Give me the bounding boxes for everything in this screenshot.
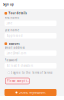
staticText: Your details bbox=[9, 11, 27, 15]
staticText: Password bbox=[4, 58, 17, 62]
button[interactable]: Jane bbox=[4, 20, 56, 26]
staticText: Sign up bbox=[3, 3, 14, 6]
button[interactable]: Create my account bbox=[4, 89, 56, 96]
button[interactable]: At least 8 characters bbox=[4, 63, 56, 68]
button[interactable]: jane@mail.com bbox=[4, 50, 56, 56]
button[interactable]: I agree to the Terms of Service bbox=[4, 71, 56, 74]
staticText: I agree to the Terms of Service bbox=[11, 71, 53, 74]
button[interactable]: Appleseed bbox=[4, 33, 56, 38]
staticText: First name bbox=[4, 16, 19, 19]
staticText: Last name bbox=[4, 28, 19, 32]
staticText: At least 8 characters bbox=[7, 64, 33, 67]
staticText: Please accept the terms bbox=[7, 79, 29, 83]
staticText: Account bbox=[9, 42, 20, 45]
staticText: Create my account bbox=[19, 91, 46, 94]
staticText: Jane bbox=[7, 21, 13, 25]
staticText: Appleseed bbox=[7, 34, 23, 37]
staticText: jane@mail.com bbox=[7, 51, 26, 55]
staticText: Email address bbox=[4, 46, 24, 49]
